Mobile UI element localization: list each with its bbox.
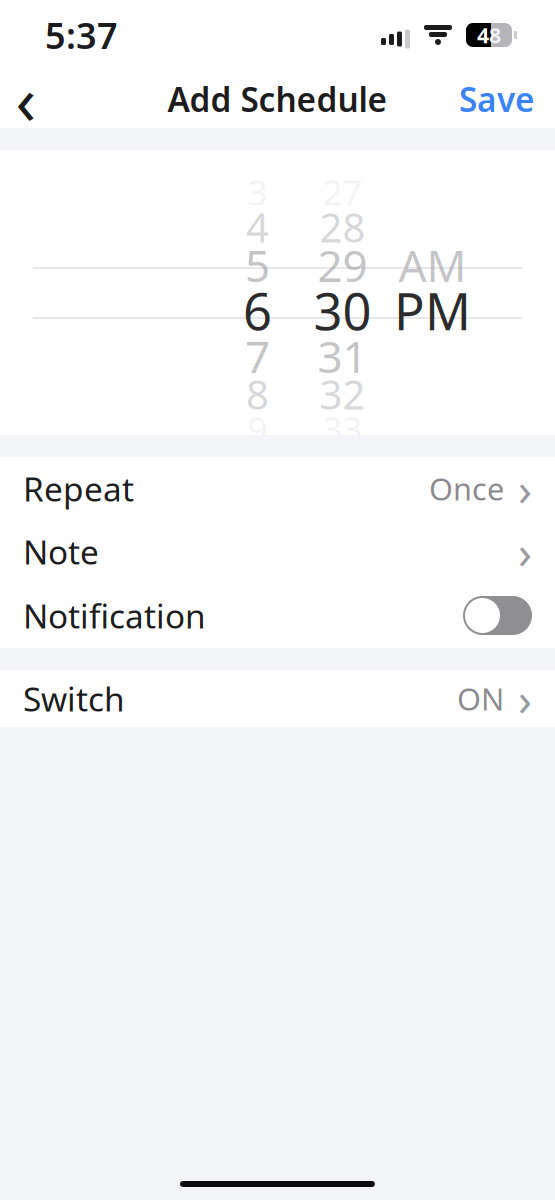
staticText: Repeat	[23, 466, 134, 511]
staticText: ‹	[15, 55, 36, 143]
staticText: 6	[243, 277, 272, 344]
staticText: Switch	[23, 676, 125, 721]
button[interactable]: Repeat	[0, 457, 555, 520]
staticText: ›	[518, 521, 532, 582]
staticText: ON	[457, 678, 504, 719]
staticText: 4	[246, 200, 269, 253]
staticText: PM	[394, 277, 471, 344]
staticText: 5:37	[45, 11, 118, 59]
staticText: 5	[245, 236, 270, 294]
staticText: 33	[322, 406, 362, 452]
staticText: 29	[317, 236, 367, 294]
staticText: ›	[518, 668, 532, 729]
staticText: Notification	[23, 593, 206, 638]
staticText: 8	[489, 21, 501, 49]
button[interactable]: Switch	[0, 670, 555, 727]
staticText: Add Schedule	[167, 77, 387, 121]
staticText: 4	[477, 21, 489, 49]
button[interactable]: Back	[2, 70, 50, 128]
staticText: 31	[317, 327, 367, 385]
staticText: 3	[247, 169, 267, 215]
staticText: ›	[518, 458, 532, 519]
staticText: AM	[398, 236, 466, 294]
staticText: Once	[429, 468, 504, 509]
staticText: 28	[319, 200, 365, 253]
staticText: 32	[319, 367, 365, 420]
staticText: 7	[245, 327, 270, 385]
staticText: 8	[246, 367, 269, 420]
staticText: 30	[313, 277, 371, 344]
button[interactable]: Save	[451, 70, 543, 128]
staticText: Save	[459, 77, 535, 121]
staticText: 9	[247, 406, 267, 452]
button[interactable]: Note	[0, 520, 555, 583]
button[interactable]: Notification toggle, off	[463, 596, 532, 635]
staticText: 27	[322, 169, 362, 215]
staticText: Note	[23, 529, 99, 574]
